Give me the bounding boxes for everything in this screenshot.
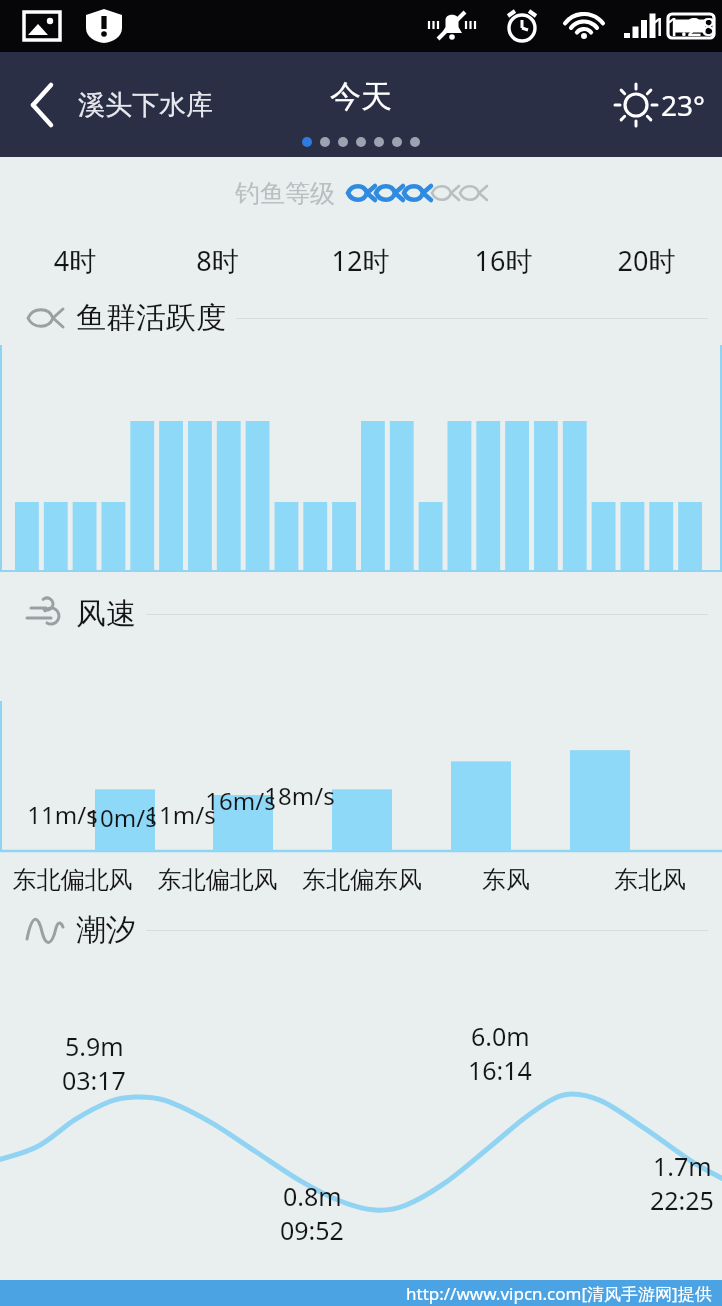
button[interactable]: 11m/s (0, 641, 722, 903)
staticText: 风速 (76, 595, 136, 633)
staticText: 东北偏北风 (145, 865, 290, 895)
staticText: 溪头下水库 (78, 88, 213, 122)
staticText: http://www.vipcn.com[清风手游网]提供 (406, 1282, 712, 1305)
staticText: 东北风 (578, 865, 722, 895)
staticText: 6.0m (471, 1019, 530, 1053)
other: Weather (613, 82, 659, 128)
staticText: 11:28 (652, 9, 716, 43)
button[interactable]: Back (14, 77, 70, 133)
staticText: 12时 (289, 242, 432, 279)
staticText: 16:14 (468, 1053, 532, 1087)
staticText: 18m/s (264, 779, 335, 812)
staticText: 今天 (330, 77, 392, 116)
staticText: 1.7m (653, 1149, 712, 1183)
staticText: 东北偏北风 (0, 865, 145, 895)
staticText: 东北偏东风 (290, 865, 434, 895)
staticText: 东风 (434, 865, 578, 895)
staticText: 钓鱼等级 (235, 178, 335, 209)
staticText: 11m/s (145, 798, 216, 831)
staticText: 11m/s (27, 798, 98, 831)
staticText: 10m/s (86, 801, 157, 834)
staticText: 20时 (575, 242, 718, 279)
staticText: 03:17 (62, 1063, 126, 1097)
staticText: 23° (661, 86, 706, 124)
staticText: 潮汐 (76, 911, 136, 949)
staticText: 09:52 (280, 1213, 344, 1247)
staticText: 16m/s (205, 784, 276, 817)
staticText: 16时 (432, 242, 575, 279)
staticText: 鱼群活跃度 (76, 299, 226, 337)
staticText: 8时 (146, 242, 289, 279)
button[interactable]: 5.9m (0, 957, 722, 1280)
staticText: 22:25 (650, 1183, 714, 1217)
button[interactable]: Weather (613, 82, 706, 128)
staticText: 4时 (4, 242, 146, 279)
button[interactable] (0, 345, 722, 587)
staticText: 5.9m (65, 1029, 124, 1063)
staticText: 0.8m (283, 1179, 342, 1213)
